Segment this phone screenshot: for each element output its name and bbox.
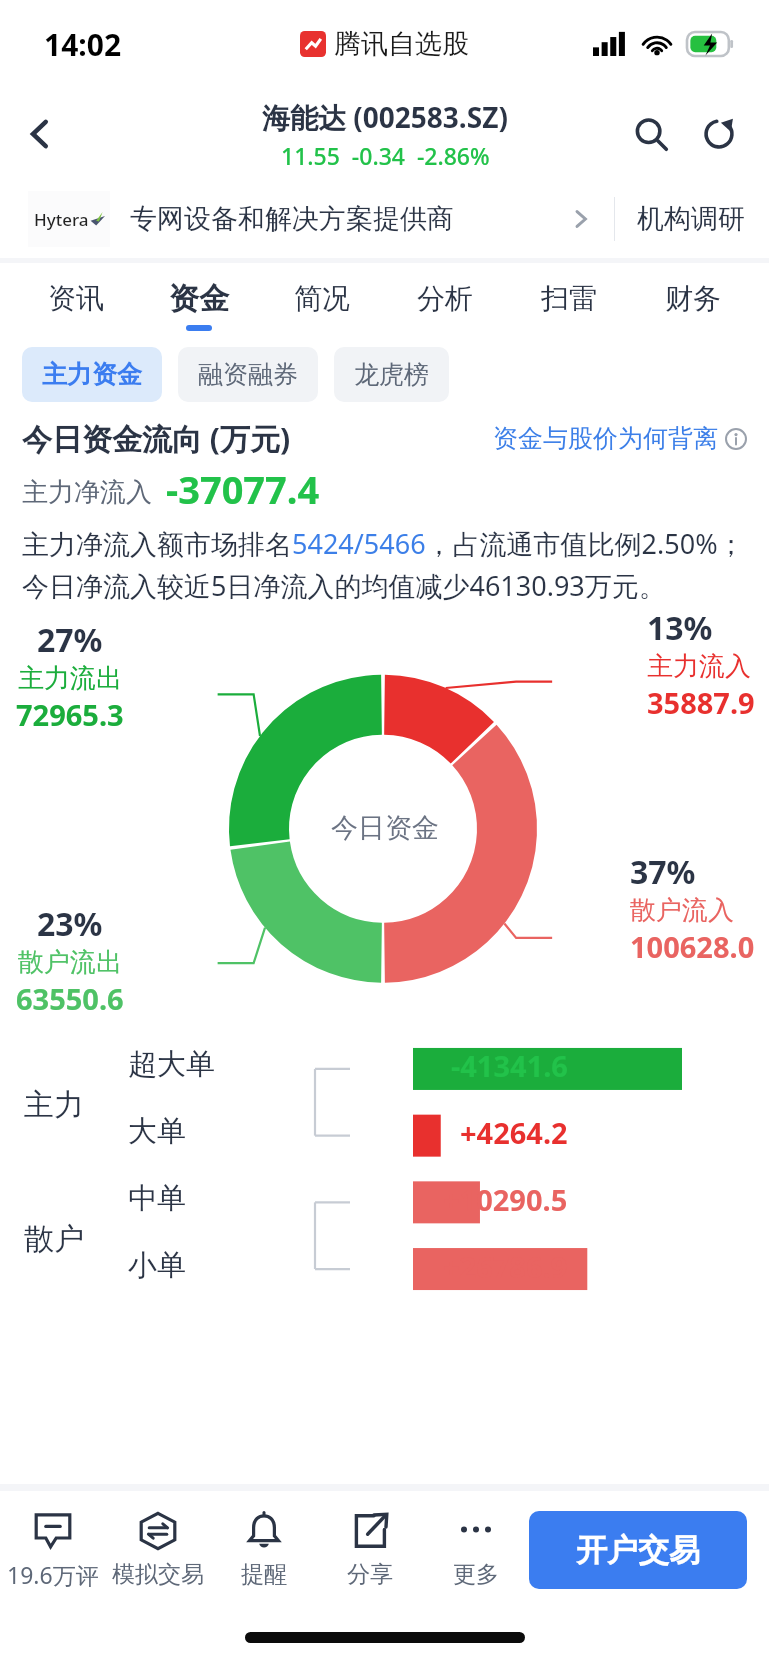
- staticText: 分享: [347, 1560, 393, 1589]
- button[interactable]: Search: [623, 106, 679, 162]
- staticText: 大单: [128, 1113, 186, 1150]
- button[interactable]: 资金: [137, 263, 260, 347]
- button[interactable]: 扫雷: [507, 263, 631, 347]
- staticText: -41341.6: [451, 1046, 568, 1085]
- button[interactable]: 主力资金: [22, 347, 162, 402]
- staticText: 分析: [417, 281, 473, 316]
- staticText: 今日资金: [331, 811, 439, 845]
- staticText: 资讯: [48, 281, 104, 316]
- staticText: 11.55 -0.34 -2.86%: [281, 140, 490, 171]
- staticText: 37%: [630, 850, 696, 894]
- staticText: 更多: [453, 1560, 499, 1589]
- button[interactable]: 龙虎榜: [334, 347, 449, 402]
- staticText: 主力资金: [42, 359, 142, 390]
- staticText: 100628.0: [630, 927, 755, 966]
- staticText: 资金与股价为何背离: [493, 423, 718, 454]
- staticText: 72965.3: [16, 695, 124, 734]
- button[interactable]: Refresh: [691, 106, 747, 162]
- staticText: +26786.9: [443, 1247, 568, 1286]
- staticText: 腾讯自选股: [334, 27, 469, 61]
- staticText: +10290.5: [443, 1180, 568, 1219]
- staticText: 主力流入: [647, 650, 751, 683]
- staticText: 融资融券: [198, 359, 298, 390]
- button[interactable]: 分享: [317, 1491, 423, 1609]
- staticText: 主力净流入: [22, 476, 152, 509]
- button[interactable]: 资金与股价为何背离: [493, 423, 747, 454]
- staticText: 主力流出: [18, 662, 122, 695]
- staticText: 超大单: [128, 1046, 215, 1083]
- staticText: 主力净流入额市场排名5424/5466，占流通市值比例2.50%；今日净流入较近…: [22, 525, 747, 604]
- button[interactable]: Back: [10, 104, 70, 164]
- staticText: 模拟交易: [112, 1560, 204, 1589]
- button[interactable]: 模拟交易: [105, 1491, 211, 1609]
- staticText: 专网设备和解决方案提供商: [130, 202, 454, 236]
- staticText: 龙虎榜: [354, 359, 429, 390]
- staticText: 小单: [128, 1247, 186, 1284]
- button[interactable]: 财务: [631, 263, 755, 347]
- staticText: +4264.2: [460, 1113, 568, 1152]
- button[interactable]: 资讯: [14, 263, 137, 347]
- button[interactable]: 19.6万评: [0, 1491, 105, 1609]
- staticText: 中单: [128, 1180, 186, 1217]
- staticText: -37077.4: [166, 463, 320, 515]
- staticText: 资金: [169, 280, 229, 318]
- button[interactable]: 更多: [423, 1491, 529, 1609]
- staticText: 散户: [24, 1220, 84, 1258]
- staticText: 19.6万评: [7, 1559, 99, 1590]
- button[interactable]: 简况: [260, 263, 383, 347]
- staticText: 今日资金流向 (万元): [22, 418, 291, 459]
- staticText: 13%: [647, 606, 713, 650]
- button[interactable]: 提醒: [211, 1491, 317, 1609]
- staticText: 27%: [37, 618, 103, 662]
- staticText: 扫雷: [541, 281, 597, 316]
- staticText: 开户交易: [576, 1531, 700, 1570]
- staticText: 财务: [665, 281, 721, 316]
- staticText: 海能达 (002583.SZ): [262, 98, 508, 136]
- button[interactable]: 分析: [383, 263, 507, 347]
- button[interactable]: Hytera: [0, 180, 769, 258]
- button[interactable]: 机构调研: [637, 202, 745, 236]
- staticText: 提醒: [241, 1560, 287, 1589]
- button[interactable]: 融资融券: [178, 347, 318, 402]
- staticText: 简况: [294, 281, 350, 316]
- staticText: 散户流入: [630, 894, 734, 927]
- staticText: 主力: [24, 1086, 84, 1124]
- staticText: 散户流出: [18, 946, 122, 979]
- staticText: Hytera: [34, 208, 89, 231]
- staticText: 35887.9: [647, 683, 755, 722]
- button[interactable]: 开户交易: [529, 1511, 747, 1589]
- staticText: 23%: [37, 902, 103, 946]
- staticText: 63550.6: [16, 979, 124, 1018]
- staticText: 14:02: [44, 24, 122, 65]
